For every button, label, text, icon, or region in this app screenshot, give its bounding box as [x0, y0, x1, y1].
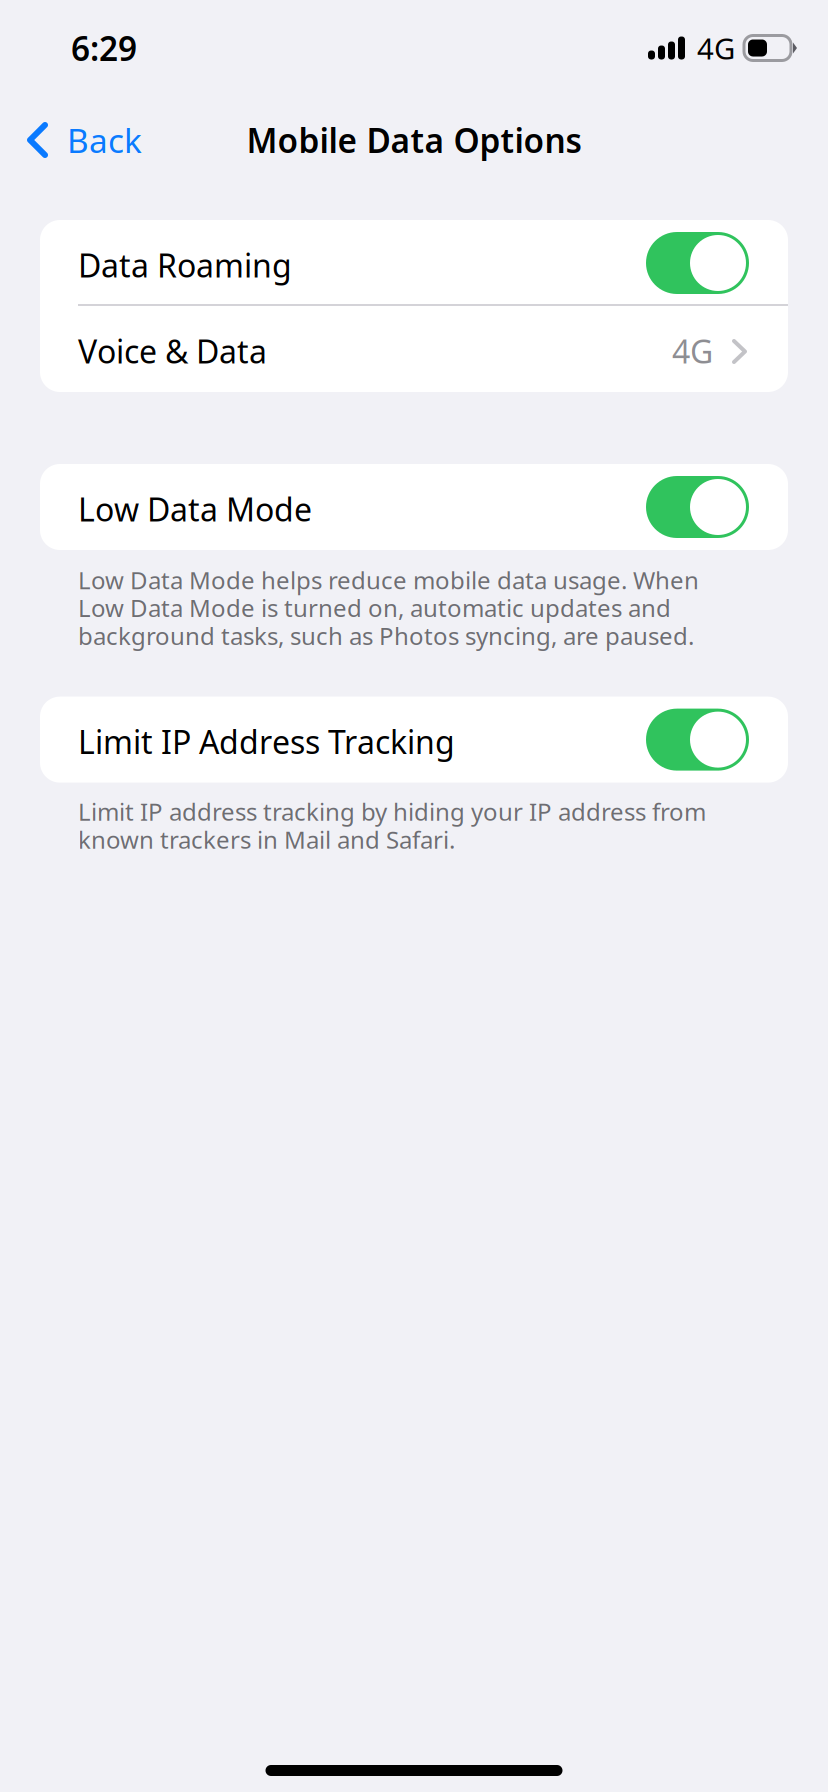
button[interactable]: Limit IP Address Tracking [40, 697, 788, 783]
staticText: background tasks, such as Photos syncing… [78, 620, 694, 652]
staticText: 4G [672, 330, 713, 372]
staticText: Mobile Data Options [246, 118, 581, 162]
staticText: Back [67, 118, 142, 162]
staticText: Low Data Mode helps reduce mobile data u… [78, 564, 699, 596]
staticText: Limit IP Address Tracking [78, 720, 455, 763]
staticText: 6:29 [71, 26, 137, 70]
staticText: Voice & Data [78, 330, 267, 372]
button[interactable]: Back [0, 96, 162, 184]
button[interactable]: Data Roaming [40, 220, 788, 306]
staticText: known trackers in Mail and Safari. [78, 823, 455, 855]
staticText: 4G [697, 28, 735, 67]
staticText: Low Data Mode is turned on, automatic up… [78, 592, 671, 624]
staticText: Limit IP address tracking by hiding your… [78, 796, 706, 827]
button[interactable]: Low Data Mode [40, 464, 788, 550]
staticText: Data Roaming [78, 244, 292, 286]
staticText: Low Data Mode [78, 488, 312, 530]
button[interactable]: Voice & Data [40, 306, 788, 392]
